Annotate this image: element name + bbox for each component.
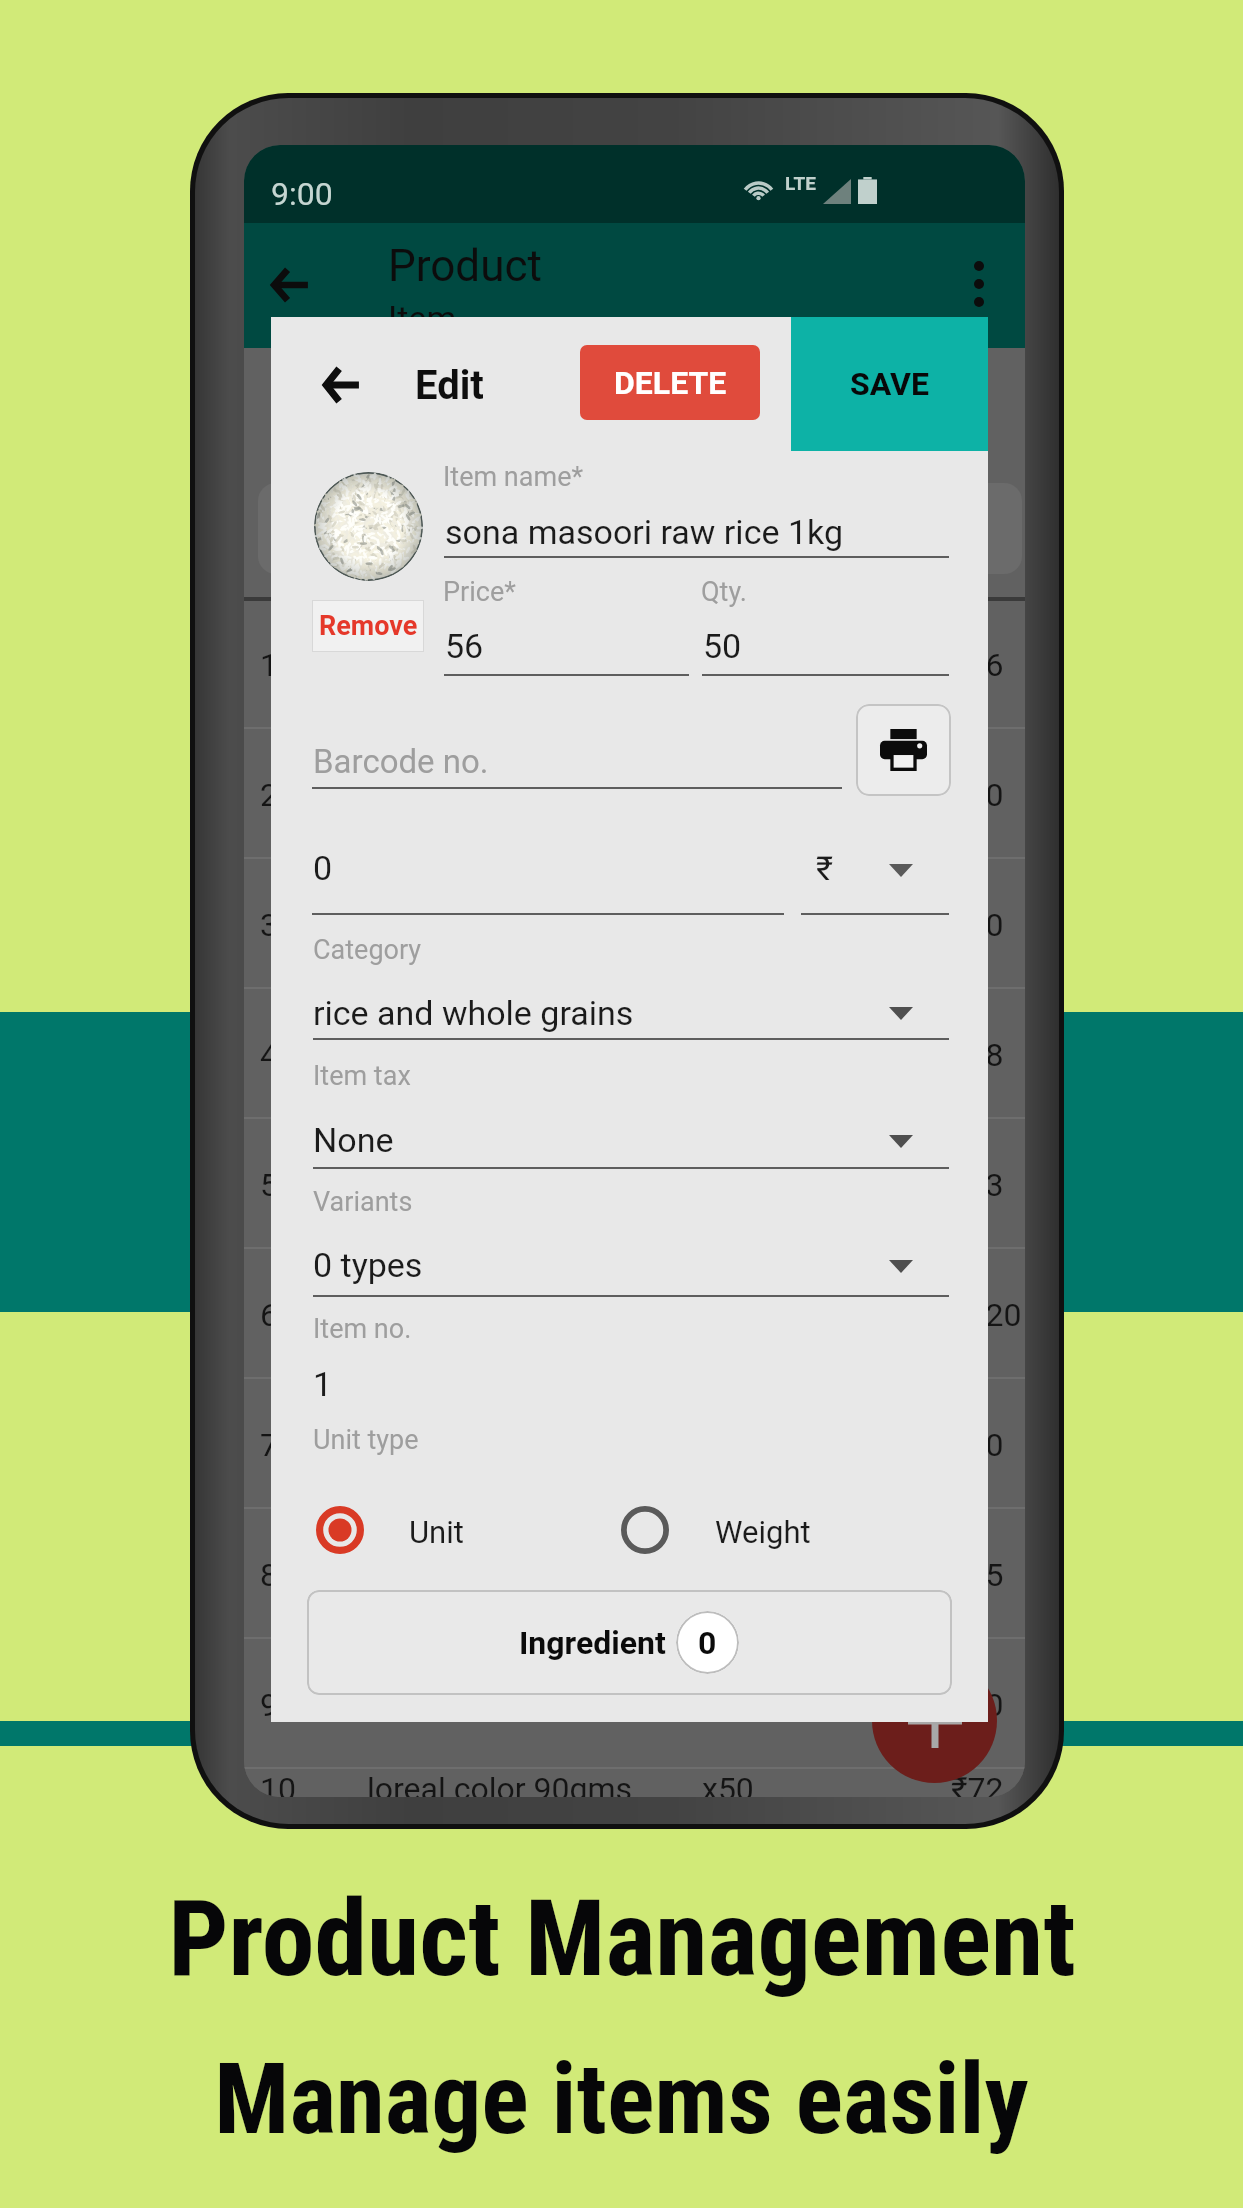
staticText: Manage items easily xyxy=(214,2041,1029,2157)
staticText: 1 xyxy=(313,1364,333,1404)
staticText: Weight xyxy=(715,1514,811,1550)
staticText: 9:00 xyxy=(271,175,333,213)
button[interactable]: Add product xyxy=(872,1658,997,1783)
staticText: 0 types xyxy=(313,1245,423,1285)
staticText: Item name* xyxy=(443,461,584,493)
staticText: Qty. xyxy=(701,576,747,608)
button[interactable]: Back xyxy=(272,268,309,302)
staticText: LTE xyxy=(785,172,816,194)
staticText: 56 xyxy=(445,626,484,666)
staticText: 3 xyxy=(260,906,278,944)
staticText: Category xyxy=(313,934,422,966)
staticText: ₹72 xyxy=(951,1770,1004,1797)
button[interactable]: 3 xyxy=(244,858,1025,988)
staticText: Unit type xyxy=(313,1424,419,1456)
staticText: rice and whole grains xyxy=(313,993,634,1033)
staticText: ₹60 xyxy=(951,776,1004,814)
staticText: Search item xyxy=(280,513,439,548)
staticText: ₹48 xyxy=(951,1036,1004,1074)
staticText: 0 xyxy=(313,848,333,888)
staticText: ₹56 xyxy=(951,646,1004,684)
button[interactable]: Search items xyxy=(258,483,1022,574)
staticText: Item xyxy=(388,298,457,338)
staticText: loreal color 90gms xyxy=(367,1770,632,1797)
staticText: sugar 1kg xyxy=(367,1036,508,1074)
button[interactable]: 4 xyxy=(244,988,1025,1118)
button[interactable]: Print barcode xyxy=(856,704,951,796)
staticText: x28 xyxy=(702,1166,754,1204)
staticText: Price* xyxy=(443,576,516,608)
staticText: Edit xyxy=(415,362,484,409)
button[interactable]: 7 xyxy=(244,1378,1025,1508)
button[interactable]: Select variants xyxy=(889,1260,913,1273)
button[interactable]: 10 xyxy=(244,1768,1025,1797)
staticText: Product Management xyxy=(168,1877,1076,2001)
staticText: milk packet 500ml xyxy=(367,1686,628,1724)
staticText: sona masoori raw rice 1kg xyxy=(367,646,742,684)
staticText: ₹25 xyxy=(951,1556,1004,1594)
staticText: 7 xyxy=(260,1426,278,1464)
staticText: x20 xyxy=(702,1036,754,1074)
staticText: Barcode no. xyxy=(313,742,489,781)
button[interactable]: Remove xyxy=(312,600,424,652)
staticText: Unit xyxy=(409,1514,464,1550)
staticText: 0 xyxy=(698,1624,717,1662)
staticText: 6 xyxy=(260,1296,278,1334)
button[interactable]: Select item tax xyxy=(889,1135,913,1148)
staticText: sunflower oil 1L xyxy=(367,1296,593,1334)
button[interactable]: Unit xyxy=(309,1499,539,1561)
staticText: 4 xyxy=(260,1036,278,1074)
button[interactable]: Weight xyxy=(614,1499,854,1561)
button[interactable]: 8 xyxy=(244,1508,1025,1638)
button[interactable]: More options xyxy=(974,261,984,307)
staticText: 5 xyxy=(260,1166,278,1204)
button[interactable]: Select category xyxy=(889,1007,913,1020)
staticText: x10 xyxy=(702,776,754,814)
button[interactable]: DELETE xyxy=(580,345,760,420)
staticText: x20 xyxy=(702,906,754,944)
staticText: ₹90 xyxy=(951,906,1004,944)
staticText: Ingredient xyxy=(519,1624,666,1662)
staticText: ₹80 xyxy=(951,1426,1004,1464)
staticText: Variants xyxy=(313,1186,413,1218)
staticText: iodized salt 1kg xyxy=(367,1556,590,1594)
staticText: 10 xyxy=(260,1770,296,1797)
button[interactable]: 5 xyxy=(244,1118,1025,1248)
staticText: ₹30 xyxy=(951,1686,1004,1724)
staticText: Item tax xyxy=(313,1060,411,1092)
staticText: idly rice 1kg xyxy=(367,776,536,814)
staticText: x50 xyxy=(702,1770,754,1797)
staticText: x55 xyxy=(702,1686,754,1724)
staticText: Remove xyxy=(319,610,418,642)
staticText: toor dal 500gms xyxy=(367,906,601,944)
staticText: 9 xyxy=(260,1686,278,1724)
staticText: x18 xyxy=(702,1296,754,1334)
button[interactable]: 6 xyxy=(244,1248,1025,1378)
button[interactable]: SAVE xyxy=(791,317,988,451)
staticText: Product xyxy=(388,240,542,292)
staticText: None xyxy=(313,1120,394,1160)
staticText: ₹53 xyxy=(951,1166,1004,1204)
staticText: ₹ xyxy=(816,849,834,888)
staticText: x30 xyxy=(702,1556,754,1594)
staticText: x56 xyxy=(702,646,754,684)
staticText: SAVE xyxy=(850,365,929,403)
button[interactable]: 1 xyxy=(244,598,1025,728)
staticText: ₹120 xyxy=(951,1296,1022,1334)
button[interactable]: Ingredient xyxy=(307,1590,952,1695)
button[interactable]: Item photo xyxy=(314,472,423,581)
staticText: sona masoori raw rice 1kg xyxy=(445,512,843,552)
staticText: DELETE xyxy=(614,364,727,402)
staticText: 50 xyxy=(703,626,742,666)
staticText: wheat atta 1kg xyxy=(367,1166,577,1204)
staticText: tea powder 250gms xyxy=(367,1426,651,1464)
staticText: 2 xyxy=(260,776,278,814)
button[interactable]: 9 xyxy=(244,1638,1025,1768)
staticText: 8 xyxy=(260,1556,278,1594)
button[interactable]: 2 xyxy=(244,728,1025,858)
staticText: 1 xyxy=(260,646,278,684)
staticText: Item no. xyxy=(313,1313,412,1345)
button[interactable]: Back xyxy=(324,367,360,403)
